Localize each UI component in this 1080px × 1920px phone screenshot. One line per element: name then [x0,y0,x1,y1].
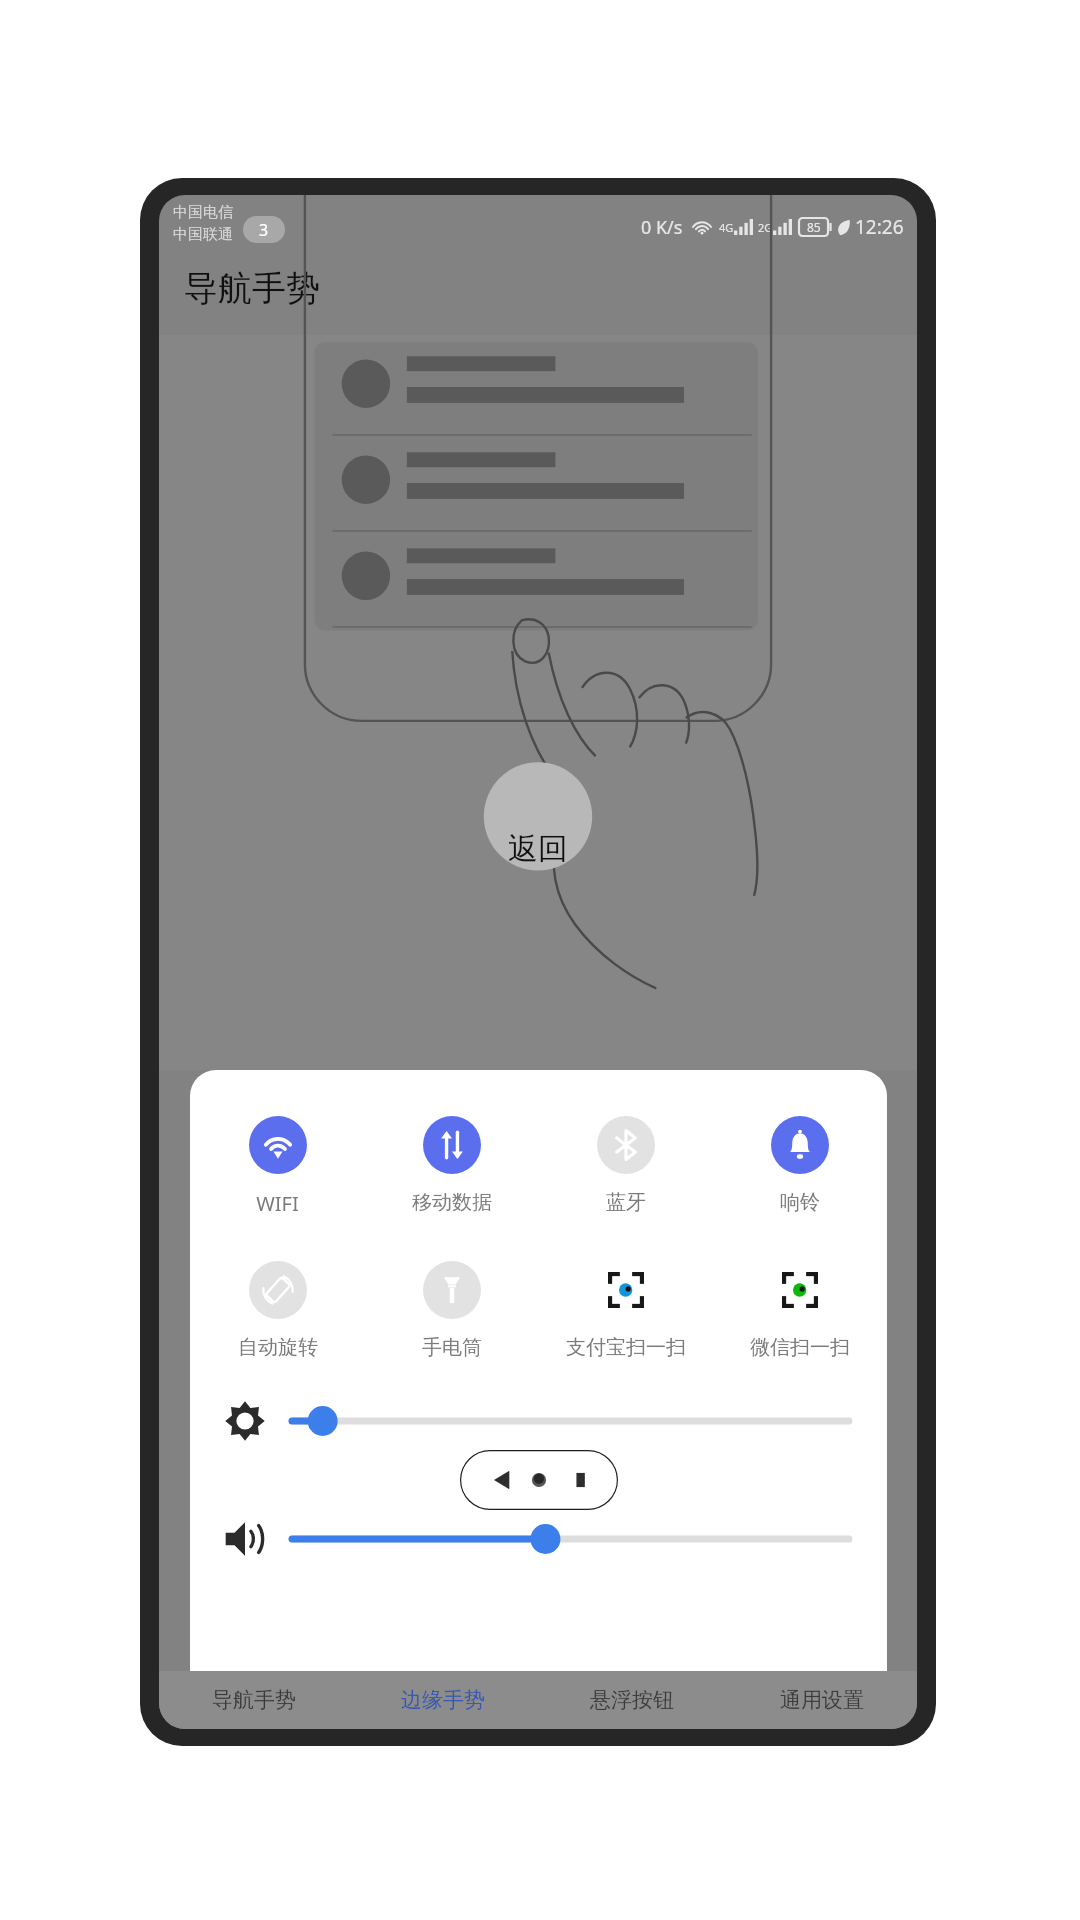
staticText: 通用设置 [780,1687,864,1713]
button[interactable] [292,1403,849,1439]
staticText: 2G [758,220,773,235]
button[interactable] [292,1521,849,1557]
button[interactable]: 导航手势 [159,1671,348,1729]
staticText: 中国电信 [173,203,233,222]
staticText: 返回 [508,830,568,868]
staticText: 支付宝扫一扫 [566,1335,686,1360]
button[interactable]: WIFI [190,1116,365,1217]
button[interactable]: 蓝牙 [539,1116,713,1215]
staticText: 中国联通 [173,225,233,244]
staticText: 手电筒 [422,1335,482,1360]
button[interactable]: 支付宝扫一扫 [539,1261,713,1360]
button[interactable]: 悬浮按钮 [537,1671,727,1729]
staticText: 微信扫一扫 [750,1335,850,1360]
staticText: 移动数据 [412,1190,492,1215]
staticText: 导航手势 [184,267,320,310]
button[interactable]: 微信扫一扫 [713,1261,887,1360]
staticText: 导航手势 [212,1687,296,1713]
button[interactable]: 边缘手势 [348,1671,537,1729]
staticText: 12:26 [855,214,904,240]
button[interactable]: 手电筒 [365,1261,539,1360]
staticText: 响铃 [780,1190,820,1215]
staticText: 3 [259,219,269,241]
staticText: 0 K/s [641,215,683,240]
staticText: 蓝牙 [606,1190,646,1215]
button[interactable]: 通用设置 [727,1671,917,1729]
other: Brightness [224,1400,266,1442]
other: Volume [224,1518,266,1560]
staticText: 边缘手势 [401,1687,485,1713]
button[interactable]: Navigation bar preview [460,1450,618,1510]
staticText: 4G [719,220,734,235]
staticText: WIFI [256,1190,299,1217]
button[interactable]: 移动数据 [365,1116,539,1215]
staticText: 85 [807,219,821,235]
staticText: 自动旋转 [238,1335,318,1360]
button[interactable]: 响铃 [713,1116,887,1215]
staticText: 悬浮按钮 [590,1687,674,1713]
button[interactable]: 自动旋转 [190,1261,365,1360]
